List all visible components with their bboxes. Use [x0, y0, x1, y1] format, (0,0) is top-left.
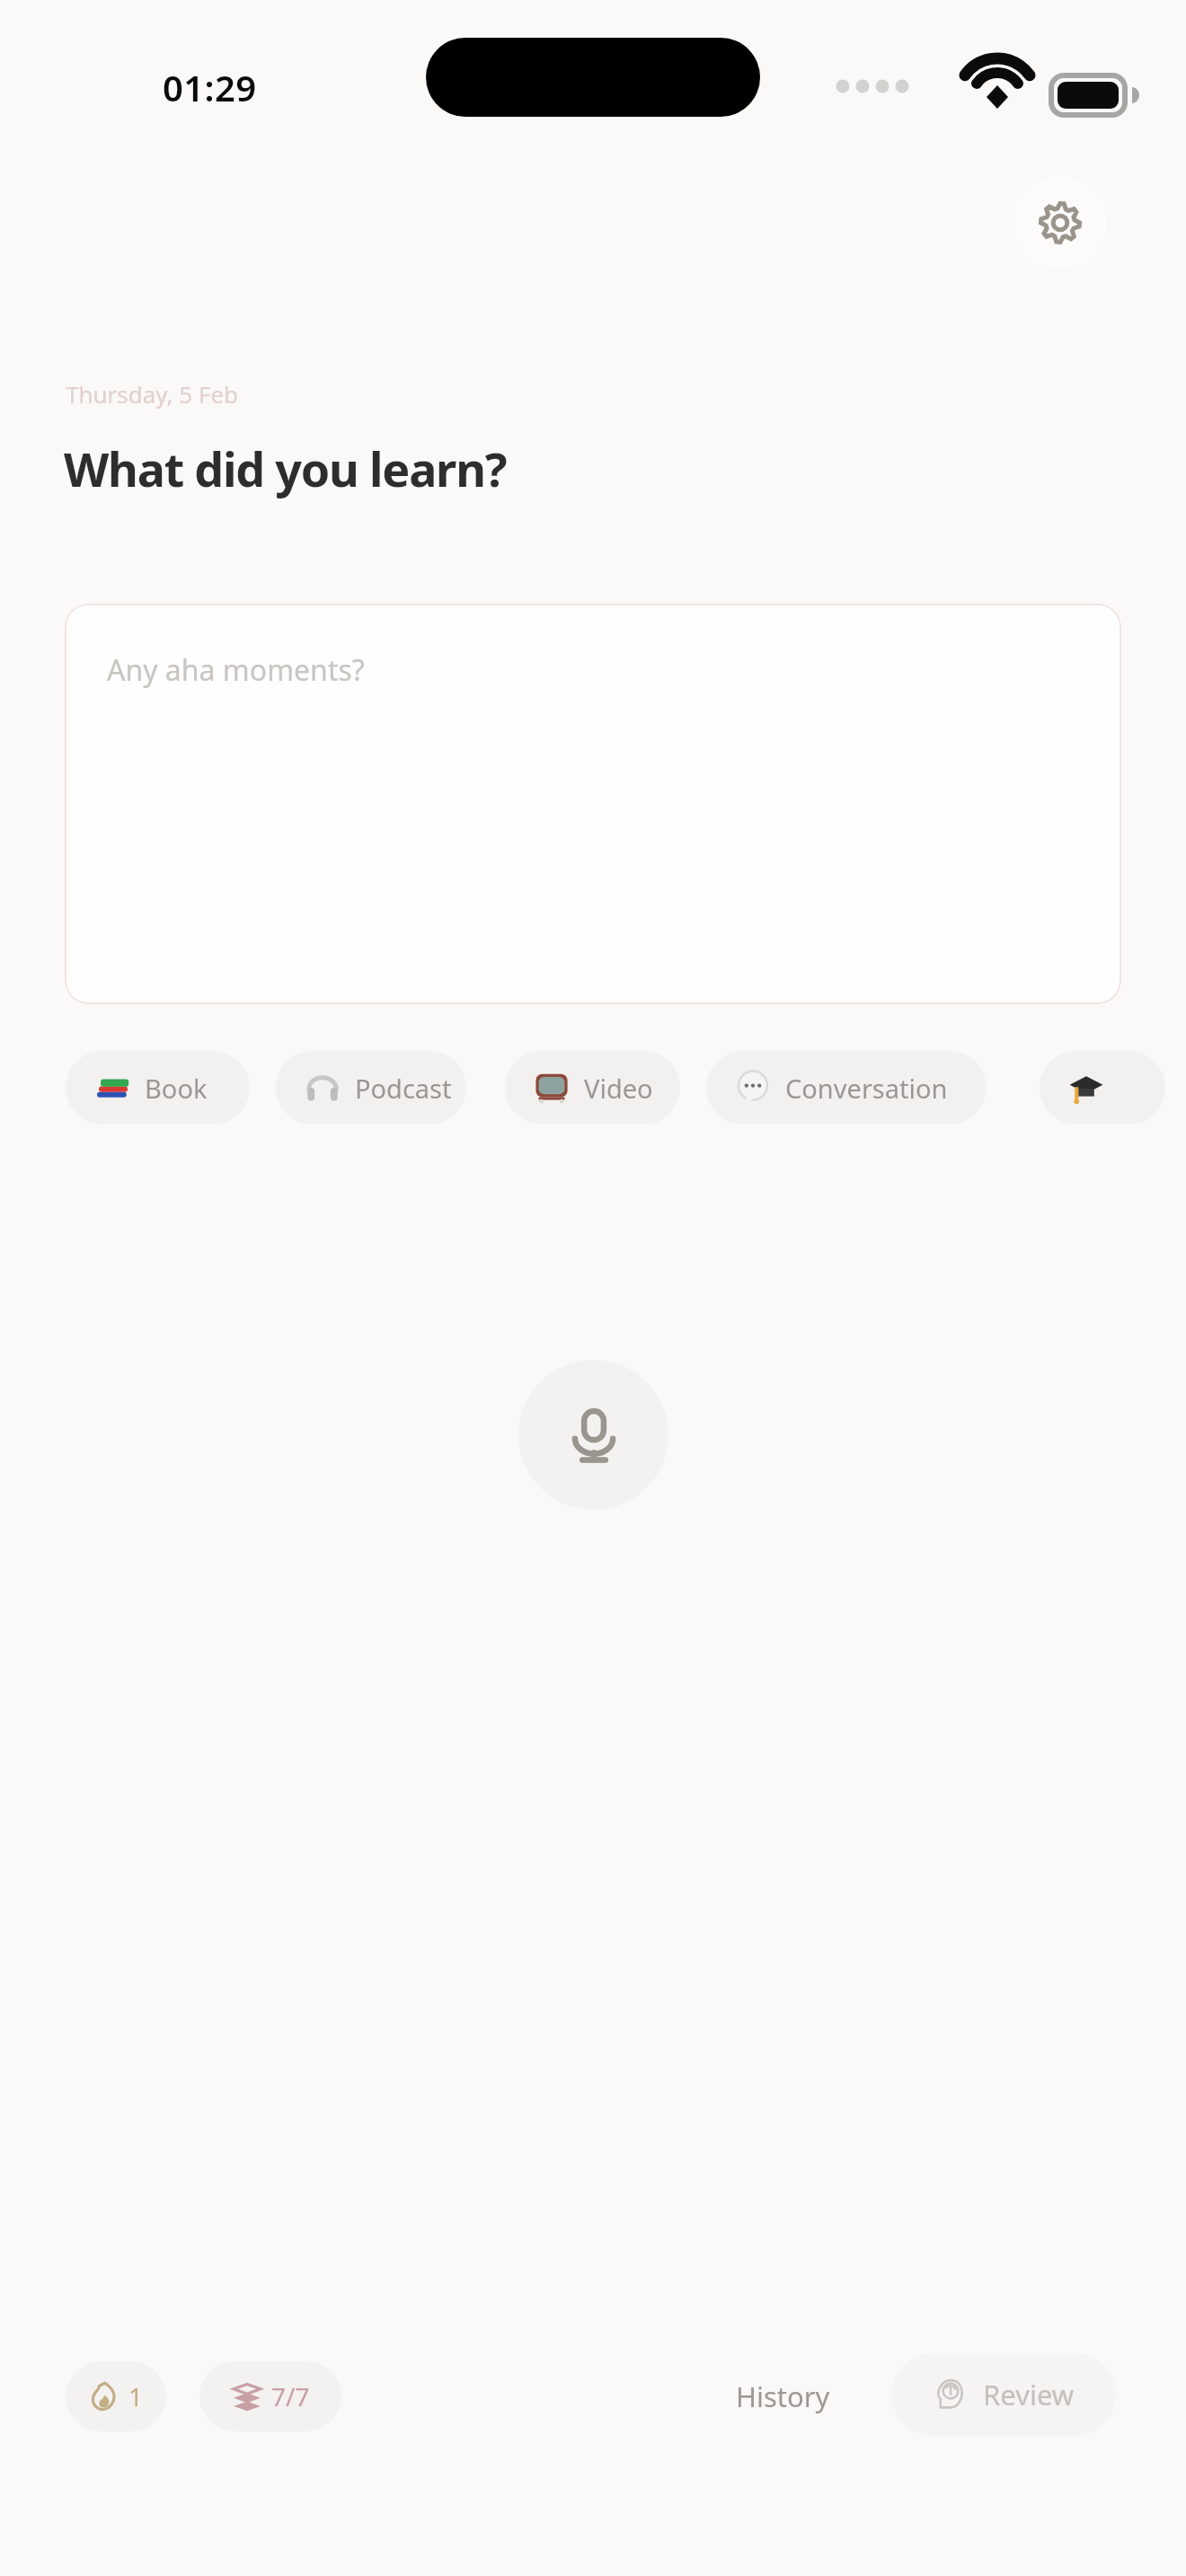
staticText: What did you learn? — [64, 437, 507, 500]
button[interactable]: Conversation — [706, 1051, 987, 1125]
button[interactable]: History — [715, 2361, 850, 2431]
staticText: 01:29 — [163, 63, 257, 111]
staticText: Book — [145, 1071, 208, 1106]
button[interactable]: Settings — [1013, 176, 1107, 269]
staticText: History — [736, 2378, 830, 2415]
button[interactable]: Any aha moments? — [65, 604, 1121, 1004]
button[interactable]: 7/7 — [199, 2361, 341, 2431]
button[interactable]: 1 — [66, 2361, 166, 2431]
button[interactable]: Record voice note — [518, 1360, 668, 1510]
staticText: 1 — [128, 2379, 144, 2413]
button[interactable]: Review — [891, 2353, 1116, 2436]
staticText: 7/7 — [271, 2379, 310, 2413]
staticText: Podcast — [355, 1071, 452, 1106]
staticText: Video — [584, 1071, 653, 1106]
button[interactable]: Video — [505, 1051, 680, 1125]
button[interactable]: Podcast — [276, 1051, 466, 1125]
staticText: Conversation — [785, 1071, 948, 1106]
button[interactable]: Book — [66, 1051, 250, 1125]
staticText: Any aha moments? — [107, 650, 365, 690]
button[interactable] — [1040, 1051, 1165, 1125]
staticText: Review — [983, 2376, 1075, 2413]
staticText: Thursday, 5 Feb — [66, 378, 239, 410]
